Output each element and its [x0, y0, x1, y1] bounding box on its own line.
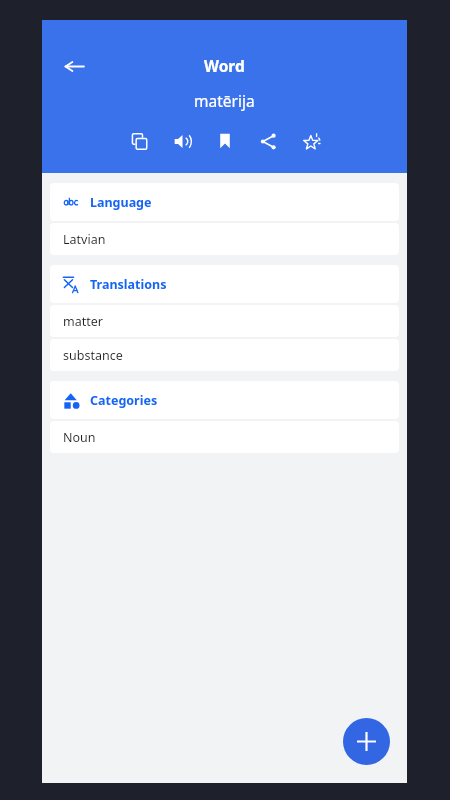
staticText: Latvian	[63, 231, 106, 248]
button[interactable]: Add word	[343, 718, 390, 765]
staticText: matter	[63, 313, 103, 330]
staticText: Translations	[90, 276, 167, 293]
button[interactable]: matter	[50, 305, 399, 337]
button[interactable]: Share	[251, 124, 285, 158]
button[interactable]: Favorite	[294, 124, 328, 158]
button[interactable]: Play pronunciation	[165, 124, 199, 158]
button[interactable]: Noun	[50, 421, 399, 453]
staticText: Categories	[90, 392, 158, 409]
button[interactable]: Categories	[50, 381, 399, 419]
staticText: Word	[204, 55, 245, 76]
staticText: Noun	[63, 429, 96, 446]
button[interactable]: Back	[54, 46, 94, 86]
staticText: substance	[63, 347, 123, 364]
button[interactable]: Copy	[122, 124, 156, 158]
button[interactable]: substance	[50, 339, 399, 371]
button[interactable]: Language	[50, 183, 399, 221]
button[interactable]: Translations	[50, 265, 399, 303]
button[interactable]: Bookmark	[208, 124, 242, 158]
staticText: Language	[90, 194, 152, 211]
staticText: matērija	[194, 90, 255, 111]
button[interactable]: Latvian	[50, 223, 399, 255]
